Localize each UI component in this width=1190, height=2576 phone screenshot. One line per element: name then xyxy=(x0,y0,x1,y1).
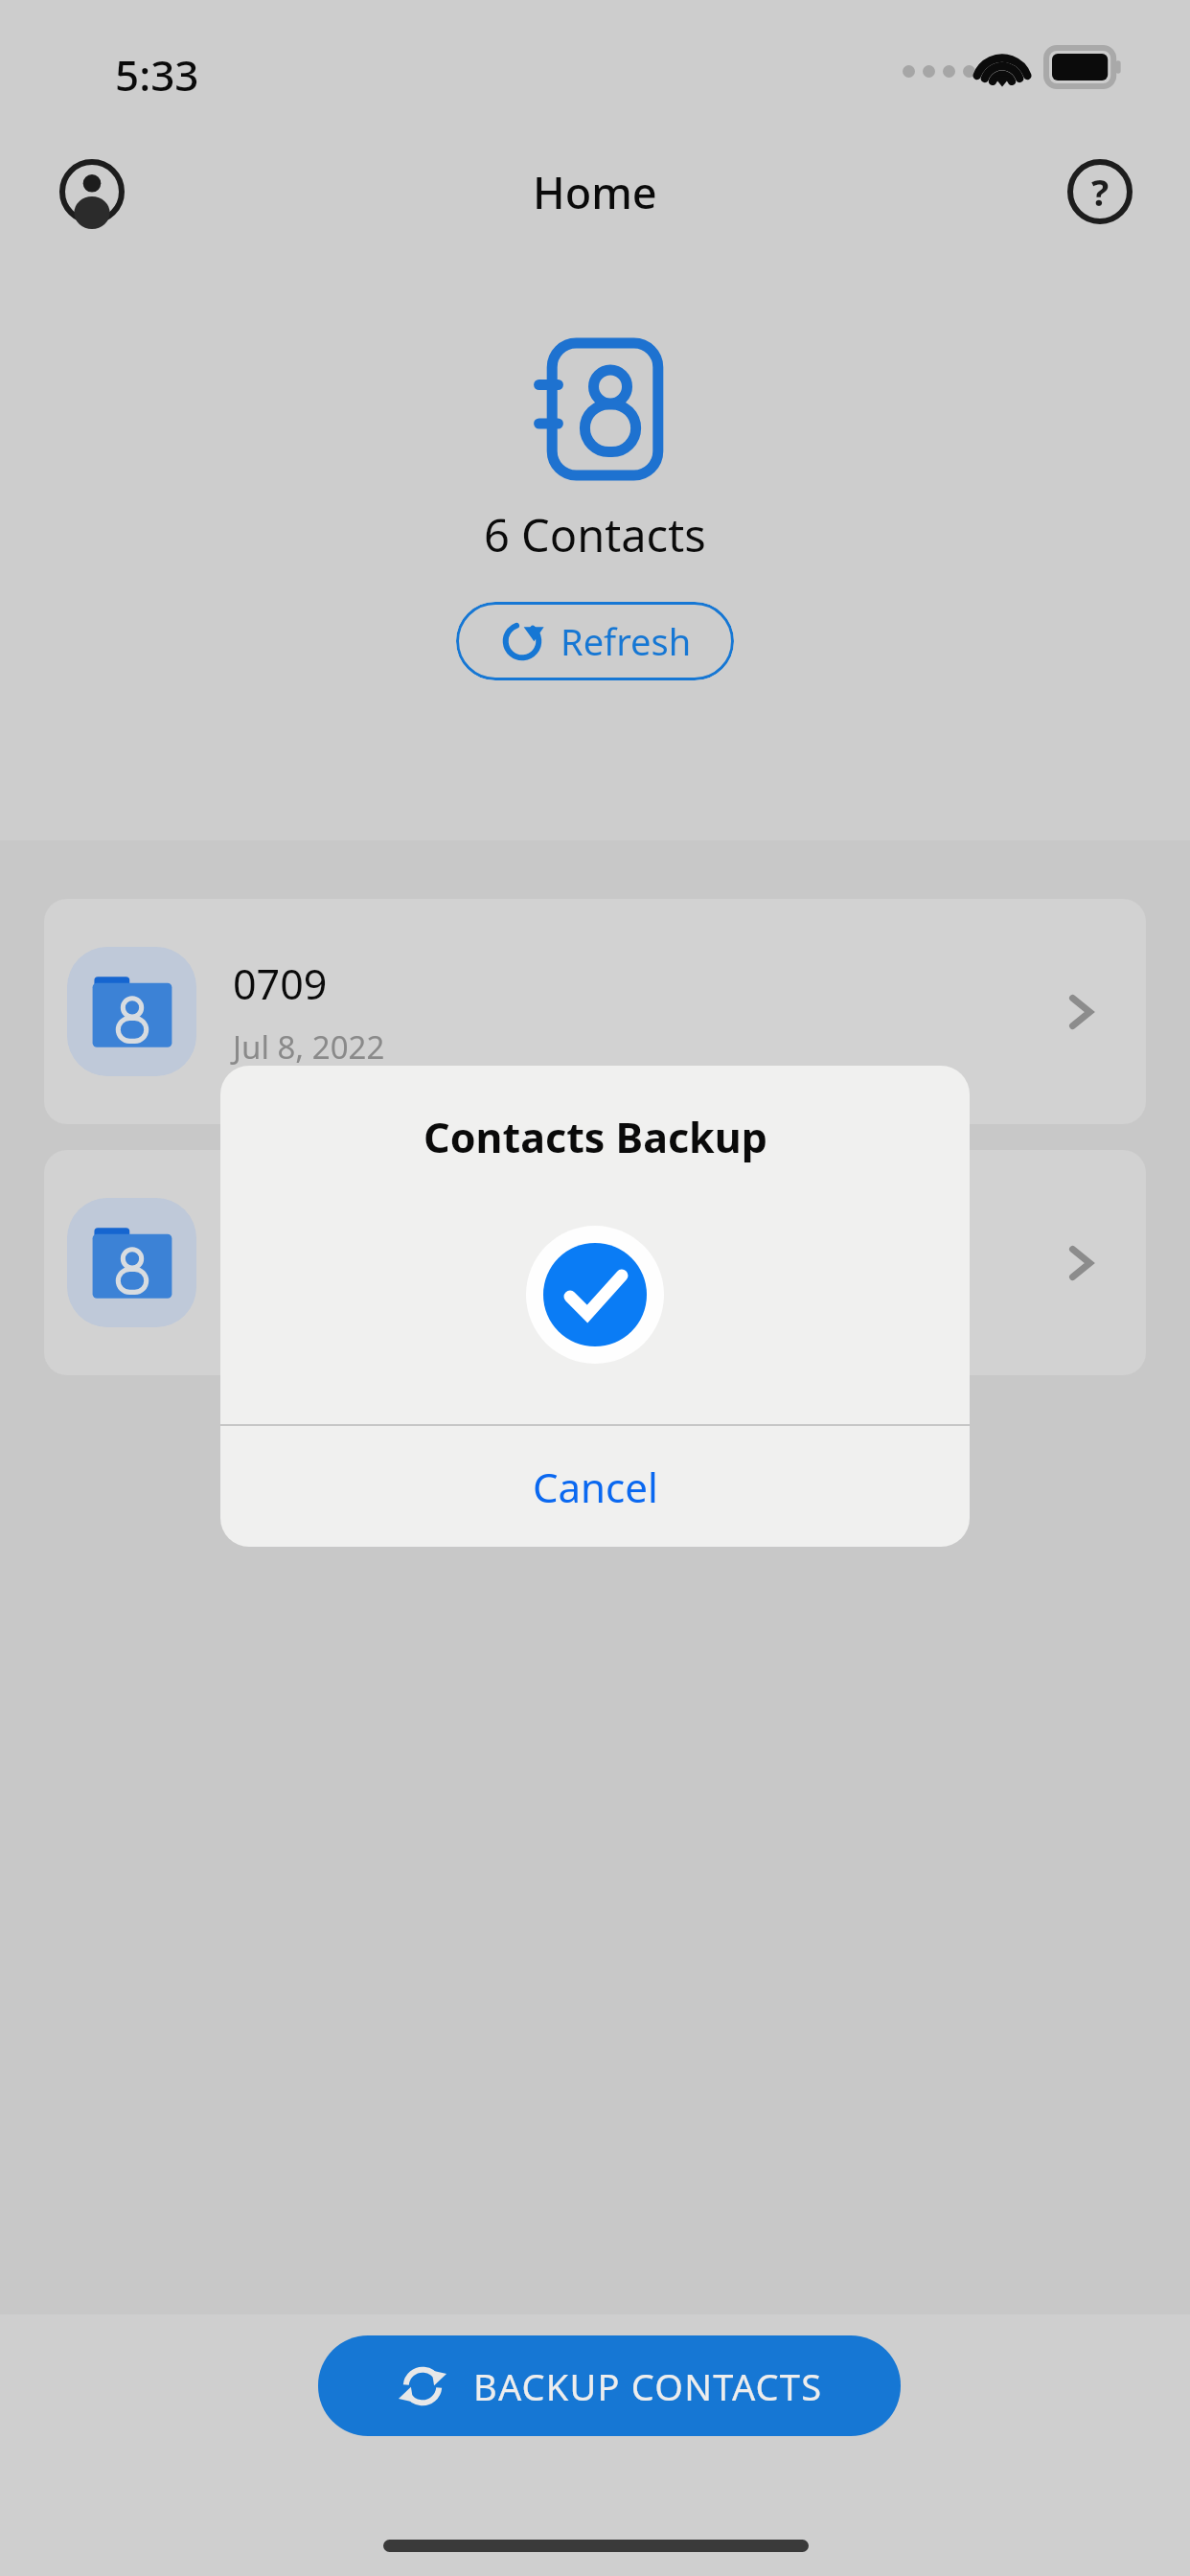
staticText: Home xyxy=(533,163,657,221)
button[interactable]: Refresh xyxy=(456,602,734,680)
button[interactable]: BACKUP CONTACTS xyxy=(318,2335,901,2436)
button[interactable] xyxy=(44,1150,1146,1375)
button[interactable]: Help xyxy=(1064,155,1136,228)
staticText: Cancel xyxy=(533,1460,658,1514)
staticText: Refresh xyxy=(561,616,692,666)
button[interactable]: 0709 xyxy=(44,899,1146,1124)
staticText: BACKUP CONTACTS xyxy=(473,2361,823,2411)
button[interactable]: Cancel xyxy=(220,1426,970,1547)
staticText: 6 Contacts xyxy=(484,504,706,565)
staticText: 5:33 xyxy=(115,46,199,103)
staticText: Contacts Backup xyxy=(423,1109,767,1165)
button[interactable]: Account xyxy=(56,155,128,228)
staticText: ? xyxy=(1091,167,1110,217)
staticText: 0709 xyxy=(233,955,328,1012)
staticText: Jul 8, 2022 xyxy=(233,1025,385,1069)
